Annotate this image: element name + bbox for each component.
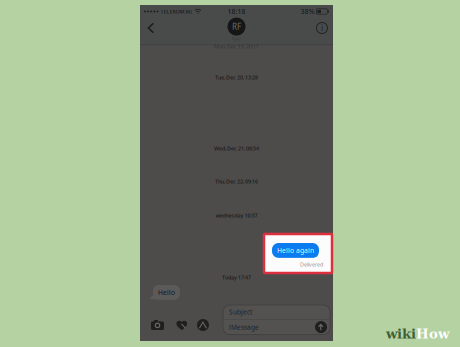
staticText: iMessage xyxy=(229,323,259,332)
staticText: Thu, Dec 22, 09:16 xyxy=(215,178,258,185)
staticText: Hello again xyxy=(277,246,314,255)
button[interactable]: Apps xyxy=(197,319,209,331)
staticText: Subject xyxy=(229,308,252,316)
staticText: Wed, Dec 21, 08:54 xyxy=(214,145,259,152)
staticText: wednesday 10:37 xyxy=(215,212,257,219)
staticText: wiki xyxy=(386,326,416,342)
button[interactable]: Camera xyxy=(151,320,164,330)
staticText: 38% xyxy=(301,7,315,16)
staticText: TELEKOM.RO xyxy=(160,8,192,15)
staticText: Delivered xyxy=(300,261,323,268)
staticText: 18:18 xyxy=(227,7,245,16)
staticText: Hello xyxy=(158,288,175,297)
button[interactable]: Details xyxy=(312,17,332,39)
staticText: Radu › xyxy=(231,36,241,41)
staticText: Today 17:47 xyxy=(222,274,251,281)
button[interactable]: Back xyxy=(141,17,161,39)
button[interactable]: Digital Touch xyxy=(176,319,188,330)
staticText: i xyxy=(321,23,323,33)
staticText: How xyxy=(416,326,449,342)
staticText: Tue, Dec 20, 13:28 xyxy=(215,74,258,81)
staticText: RF xyxy=(232,21,241,32)
button[interactable]: RF xyxy=(206,16,266,42)
staticText: Mon, Dec 19, 20:11 xyxy=(214,43,259,50)
